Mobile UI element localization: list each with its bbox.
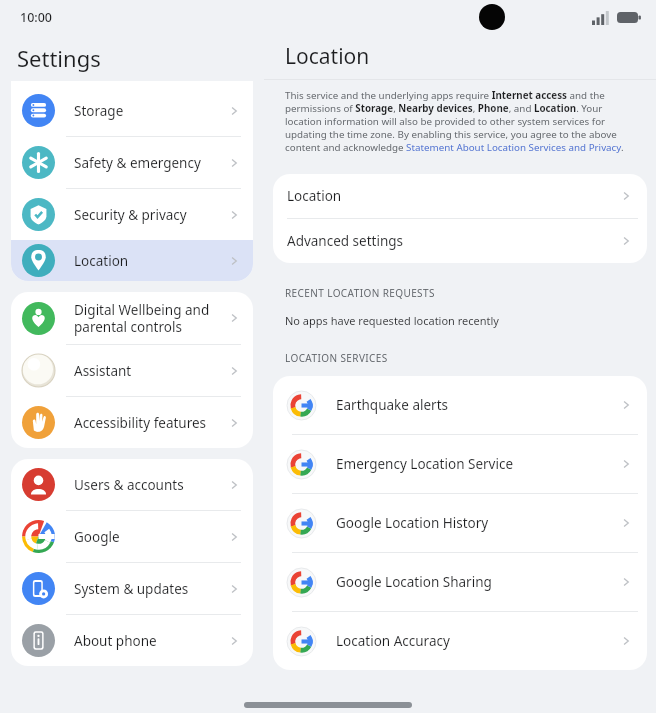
staticText: Google (74, 528, 226, 546)
staticText: RECENT LOCATION REQUESTS (285, 286, 435, 300)
button[interactable]: Location (11, 240, 253, 281)
staticText: System & updates (74, 580, 226, 598)
staticText: Security & privacy (74, 206, 226, 224)
staticText: Location (285, 42, 370, 71)
staticText: 10:00 (20, 9, 53, 26)
button[interactable]: About phone (11, 615, 253, 666)
staticText: Google Location History (336, 514, 618, 532)
staticText: Earthquake alerts (336, 396, 618, 414)
button[interactable]: Location (273, 174, 647, 218)
button[interactable]: Accessibility features (11, 397, 253, 448)
button[interactable]: Emergency Location Service (273, 435, 647, 493)
staticText: This service and the underlying apps req… (285, 89, 635, 154)
button[interactable]: Earthquake alerts (273, 376, 647, 434)
button[interactable]: Google Location History (273, 494, 647, 552)
button[interactable]: Advanced settings (273, 219, 647, 263)
staticText: Digital Wellbeing and parental controls (74, 301, 226, 336)
staticText: Location (287, 187, 618, 205)
button[interactable]: Assistant (11, 345, 253, 396)
button[interactable]: Digital Wellbeing and parental controls (11, 292, 253, 344)
staticText: Safety & emergency (74, 154, 226, 172)
staticText: LOCATION SERVICES (285, 351, 388, 365)
staticText: Google Location Sharing (336, 573, 618, 591)
staticText: Emergency Location Service (336, 455, 618, 473)
staticText: Accessibility features (74, 414, 226, 432)
staticText: Users & accounts (74, 476, 226, 494)
button[interactable]: Storage (11, 85, 253, 136)
button[interactable]: Google Location Sharing (273, 553, 647, 611)
staticText: Location (74, 252, 226, 270)
button[interactable]: Google (11, 511, 253, 562)
button[interactable]: Location Accuracy (273, 612, 647, 670)
button[interactable]: Safety & emergency (11, 137, 253, 188)
button[interactable]: Users & accounts (11, 459, 253, 510)
staticText: About phone (74, 632, 226, 650)
staticText: Advanced settings (287, 232, 618, 250)
button[interactable]: Security & privacy (11, 189, 253, 240)
staticText: Location Accuracy (336, 632, 618, 650)
staticText: Settings (17, 43, 101, 73)
staticText: Storage (74, 102, 226, 120)
staticText: No apps have requested location recently (285, 313, 499, 328)
button[interactable]: System & updates (11, 563, 253, 614)
staticText: Assistant (74, 362, 226, 380)
